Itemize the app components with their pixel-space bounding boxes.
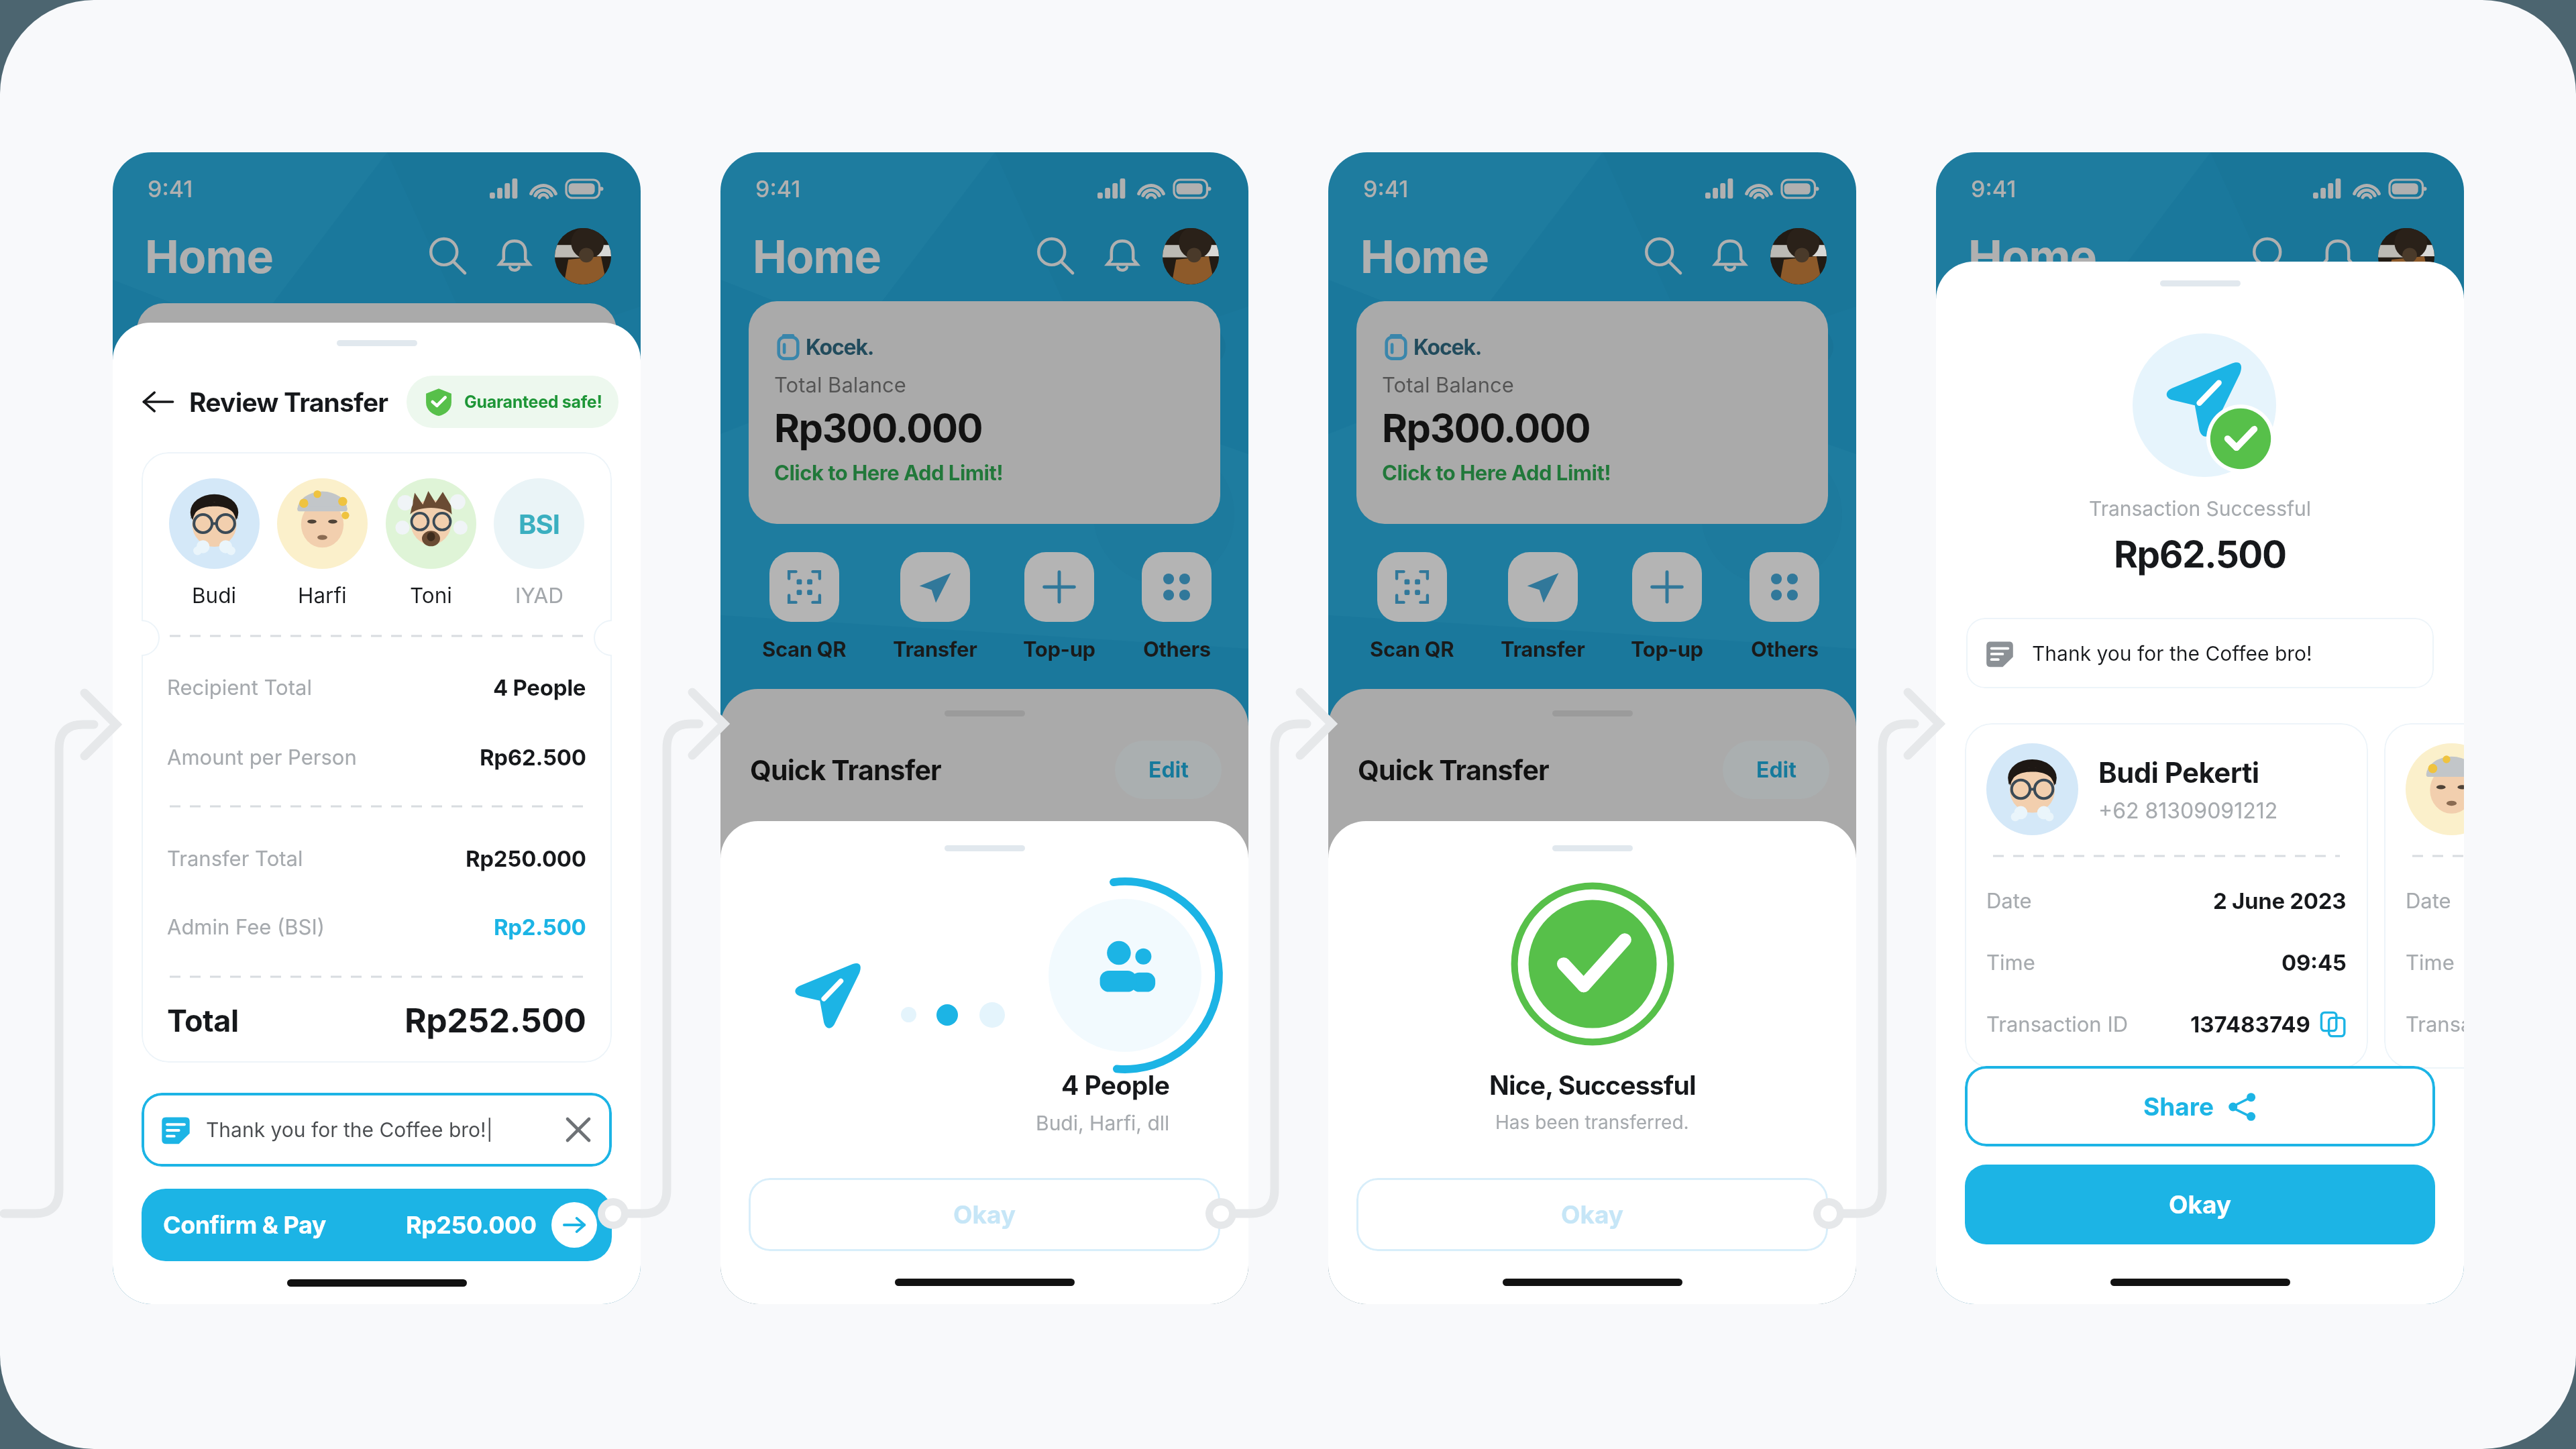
staticText: Date <box>1986 888 2032 914</box>
staticText: Share <box>2143 1091 2214 1122</box>
button[interactable]: Thank you for the Coffee bro!| <box>142 1093 612 1167</box>
staticText: Rp252.500 <box>405 1000 586 1040</box>
staticText: Transaction ID <box>1986 1012 2129 1037</box>
button[interactable]: Toni <box>386 478 476 608</box>
staticText: Kocek. <box>1413 334 1482 360</box>
button[interactable]: Profile <box>2378 228 2434 284</box>
staticText: Rp300.000 <box>774 405 983 451</box>
button[interactable]: Transfer <box>893 552 977 662</box>
staticText: Has been transferred. <box>1495 1111 1689 1134</box>
staticText: Others <box>1143 637 1211 662</box>
staticText: Amount per Person <box>167 745 357 770</box>
button[interactable]: Harfi Yanto <box>2384 723 2464 1069</box>
staticText: 4 People <box>1061 1069 1170 1101</box>
staticText: 2 June 2023 <box>2213 888 2347 914</box>
staticText: Click to Here Add Limit! <box>1382 460 1611 486</box>
button[interactable]: Scan QR <box>1370 552 1454 662</box>
button[interactable]: Notifications <box>1102 236 1142 276</box>
button[interactable]: Okay <box>749 1178 1220 1251</box>
button[interactable]: Confirm & Pay <box>142 1189 612 1261</box>
button[interactable]: Copy <box>2320 1011 2347 1038</box>
staticText: 9:41 <box>755 175 801 203</box>
staticText: Time <box>1986 950 2035 975</box>
staticText: IYAD <box>515 582 563 608</box>
button[interactable]: Harfi <box>277 478 368 608</box>
staticText: Kocek. <box>806 334 874 360</box>
button[interactable]: Share <box>1965 1066 2435 1146</box>
staticText: Total <box>167 1002 239 1038</box>
staticText: Thank you for the Coffee bro! <box>2032 641 2312 665</box>
staticText: 09:45 <box>2282 949 2347 976</box>
staticText: Budi Pekerti <box>2098 755 2259 790</box>
staticText: Okay <box>1561 1199 1624 1230</box>
staticText: Budi <box>192 582 237 608</box>
staticText: Confirm & Pay <box>163 1210 326 1240</box>
staticText: Scan QR <box>762 637 847 662</box>
button[interactable]: Profile <box>1770 228 1827 284</box>
button[interactable]: Profile <box>555 228 611 284</box>
button[interactable]: BSI <box>494 478 584 608</box>
staticText: Nice, Successful <box>1489 1069 1696 1101</box>
staticText: Rp62.500 <box>480 744 586 771</box>
button[interactable]: Notifications <box>494 236 535 276</box>
staticText: Quick Transfer <box>750 753 941 787</box>
button[interactable]: Notifications <box>2318 236 2358 276</box>
staticText: Transfer <box>1501 637 1585 662</box>
button[interactable]: Search <box>1642 234 1686 278</box>
button[interactable]: Search <box>1034 234 1078 278</box>
staticText: Transfer <box>893 637 977 662</box>
staticText: +62 81309091212 <box>2098 798 2278 824</box>
button[interactable]: Clear note <box>565 1116 592 1143</box>
staticText: 9:41 <box>1971 175 2017 203</box>
staticText: Total Balance <box>1382 372 1514 398</box>
button[interactable]: Edit <box>1115 741 1222 799</box>
staticText: 137483749 <box>2190 1011 2310 1038</box>
staticText: Transfer Total <box>167 846 303 871</box>
staticText: Transaction ID <box>2406 1012 2464 1037</box>
button[interactable]: Profile <box>1163 228 1219 284</box>
button[interactable]: Notifications <box>1710 236 1750 276</box>
staticText: 4 People <box>493 674 586 701</box>
staticText: Edit <box>1756 757 1796 783</box>
button[interactable]: Others <box>1750 552 1819 662</box>
staticText: Rp2.500 <box>494 914 586 941</box>
button[interactable]: Top-up <box>1023 552 1095 662</box>
button[interactable]: Top-up <box>1631 552 1703 662</box>
staticText: Budi, Harfi, dll <box>1036 1111 1170 1135</box>
staticText: Top-up <box>1023 637 1095 662</box>
button[interactable]: Thank you for the Coffee bro! <box>1966 618 2434 688</box>
staticText: Home <box>145 229 274 284</box>
button[interactable]: Budi <box>169 478 260 608</box>
button[interactable]: Search <box>2249 234 2294 278</box>
staticText: Rp300.000 <box>1382 405 1591 451</box>
button[interactable]: Guaranteed safe! <box>407 376 619 428</box>
staticText: Recipient Total <box>167 675 312 700</box>
staticText: Time <box>2406 950 2455 975</box>
button[interactable]: Budi Pekerti <box>1965 723 2368 1069</box>
staticText: Scan QR <box>1370 637 1454 662</box>
staticText: Quick Transfer <box>1358 753 1549 787</box>
staticText: Thank you for the Coffee bro!| <box>206 1118 493 1142</box>
button[interactable]: Okay <box>1356 1178 1828 1251</box>
button[interactable]: Others <box>1142 552 1212 662</box>
staticText: Home <box>1968 229 2097 284</box>
button[interactable]: Okay <box>1965 1165 2435 1244</box>
button[interactable]: Transfer <box>1501 552 1585 662</box>
staticText: Okay <box>953 1199 1016 1230</box>
button[interactable]: Scan QR <box>762 552 847 662</box>
button[interactable]: Back <box>142 386 174 418</box>
button[interactable]: Search <box>426 234 470 278</box>
staticText: Click to Here Add Limit! <box>774 460 1004 486</box>
button[interactable]: Edit <box>1723 741 1829 799</box>
staticText: Rp250.000 <box>406 1210 537 1240</box>
staticText: 9:41 <box>148 175 193 203</box>
staticText: Home <box>1360 229 1489 284</box>
staticText: 9:41 <box>1363 175 1409 203</box>
staticText: Edit <box>1148 757 1189 783</box>
staticText: Rp250.000 <box>466 845 586 872</box>
staticText: Total Balance <box>774 372 906 398</box>
staticText: Admin Fee (BSI) <box>167 914 325 940</box>
staticText: BSI <box>519 508 559 540</box>
staticText: Toni <box>410 582 452 608</box>
staticText: Date <box>2406 888 2451 914</box>
